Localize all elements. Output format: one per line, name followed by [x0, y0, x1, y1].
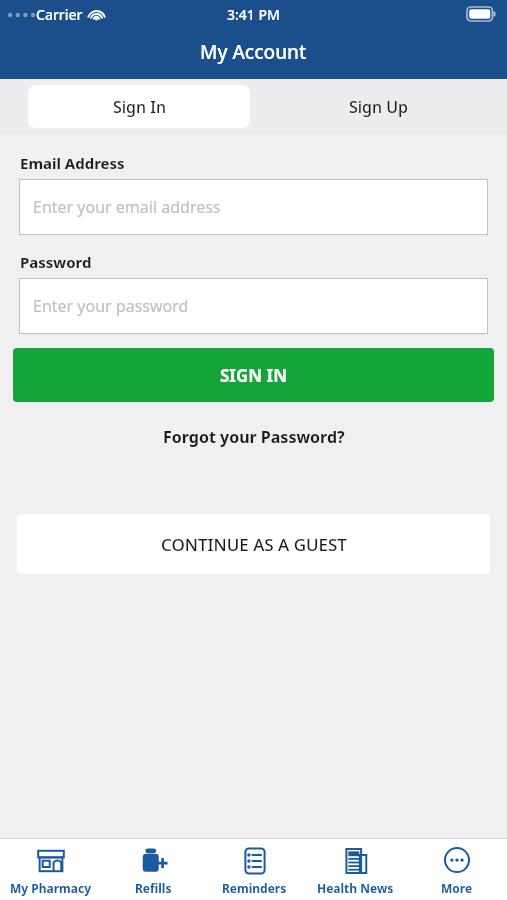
other: Reminders [239, 846, 271, 876]
button[interactable]: Forgot your Password? [0, 422, 507, 452]
button[interactable]: Reminders [204, 839, 305, 900]
staticText: Password [20, 252, 92, 272]
staticText: More [441, 880, 473, 896]
staticText: Health News [317, 880, 394, 896]
button[interactable]: SIGN IN [13, 348, 494, 402]
staticText: Carrier [36, 5, 83, 24]
button[interactable]: Sign Up [250, 79, 507, 135]
staticText: My Account [200, 39, 307, 65]
staticText: Refills [135, 880, 172, 896]
staticText: Reminders [222, 880, 287, 896]
other: More [441, 846, 473, 876]
button[interactable]: Enter your password [19, 278, 488, 334]
staticText: My Pharmacy [10, 880, 92, 896]
staticText: 3:41 PM [227, 5, 280, 24]
staticText: CONTINUE AS A GUEST [161, 533, 347, 556]
other: Refills [137, 846, 169, 876]
staticText: Enter your email address [33, 196, 221, 218]
button[interactable]: Health News [305, 839, 406, 900]
other: Health News [340, 846, 372, 876]
staticText: Sign In [113, 96, 166, 118]
staticText: Email Address [20, 153, 125, 173]
button[interactable]: CONTINUE AS A GUEST [17, 514, 490, 574]
other: My Pharmacy [35, 846, 67, 876]
staticText: SIGN IN [220, 364, 287, 387]
button[interactable]: Refills [102, 839, 204, 900]
staticText: Enter your password [33, 295, 189, 317]
staticText: Sign Up [349, 96, 408, 118]
button[interactable]: Enter your email address [19, 179, 488, 235]
button[interactable]: Sign In [28, 85, 250, 128]
button[interactable]: My Pharmacy [0, 839, 102, 900]
staticText: Forgot your Password? [163, 426, 345, 448]
button[interactable]: More [406, 839, 507, 900]
